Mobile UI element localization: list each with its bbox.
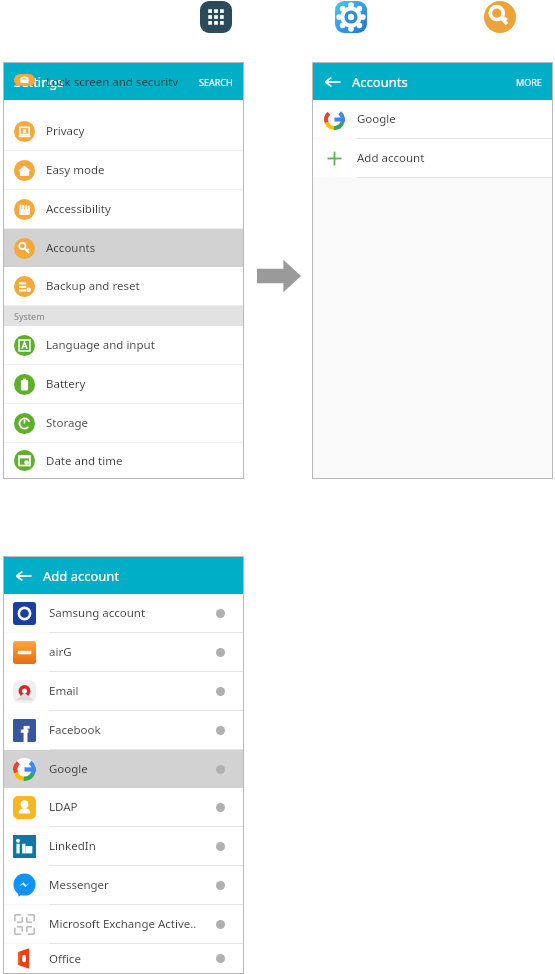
button[interactable]: Language and input [4,326,243,364]
button[interactable]: Back [323,72,343,92]
staticText: Add account [43,567,120,585]
button[interactable]: Office [4,944,243,973]
staticText: Battery [46,376,86,392]
staticText: Office [49,951,216,967]
staticText: Accounts [46,240,96,256]
button[interactable]: Date and time [4,443,243,478]
staticText: Easy mode [46,162,105,178]
staticText: Messenger [49,877,216,893]
button[interactable]: SEARCH [199,76,233,88]
button[interactable]: Samsung account [4,594,243,632]
staticText: airG [49,644,216,660]
staticText: MORE [516,76,542,88]
button[interactable]: Privacy [4,112,243,150]
button[interactable]: Add account [313,139,552,177]
button[interactable]: airG [4,633,243,671]
button[interactable]: Backup and reset [4,267,243,305]
staticText: Email [49,683,216,699]
button[interactable]: Accounts key [484,1,516,33]
staticText: Accounts [352,73,408,91]
button[interactable]: Messenger [4,866,243,904]
staticText: Accessibility [46,201,111,217]
button[interactable]: Battery [4,365,243,403]
button[interactable]: Accounts [4,229,243,267]
staticText: Samsung account [49,605,216,621]
button[interactable]: Accessibility [4,190,243,228]
button[interactable]: Microsoft Exchange Active.. [4,905,243,943]
staticText: LDAP [49,799,216,815]
staticText: Facebook [49,722,216,738]
staticText: Microsoft Exchange Active.. [49,916,216,932]
button[interactable]: Google [313,100,552,138]
button[interactable]: Settings [335,1,367,33]
button[interactable]: Apps [200,1,232,33]
button[interactable]: Back [14,566,34,586]
staticText: Privacy [46,123,85,139]
button[interactable]: LDAP [4,788,243,826]
staticText: Google [357,111,396,127]
staticText: Google [49,761,216,777]
staticText: LinkedIn [49,838,216,854]
button[interactable]: MORE [516,76,542,88]
staticText: Add account [357,150,425,166]
button[interactable]: Facebook [4,711,243,749]
button[interactable]: Storage [4,404,243,442]
staticText: Language and input [46,337,155,353]
staticText: Settings [14,73,64,91]
button[interactable]: LinkedIn [4,827,243,865]
staticText: Storage [46,415,88,431]
staticText: Lock screen and security [46,74,179,86]
button[interactable]: Easy mode [4,151,243,189]
staticText: SEARCH [199,76,233,88]
button[interactable]: Email [4,672,243,710]
button[interactable]: Google [4,750,243,788]
staticText: Backup and reset [46,278,140,294]
staticText: System [14,310,45,322]
staticText: Date and time [46,453,123,469]
